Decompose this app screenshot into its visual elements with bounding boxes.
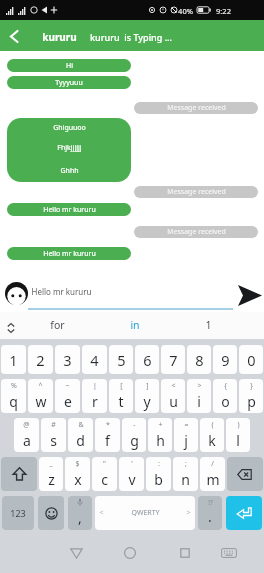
staticText: @ (23, 420, 30, 430)
button[interactable]: # (41, 418, 66, 452)
button[interactable]: 1 (189, 312, 227, 338)
staticText: z (48, 470, 55, 489)
button[interactable] (64, 541, 88, 565)
staticText: Fhjkjjjjjj (57, 143, 82, 153)
staticText: - (133, 420, 136, 430)
button[interactable]: & (68, 418, 93, 452)
button[interactable]: 9 (213, 345, 237, 374)
button[interactable]: for (38, 312, 76, 338)
button[interactable] (5, 282, 28, 305)
button[interactable] (227, 457, 263, 491)
button[interactable]: 6 (135, 345, 159, 374)
button[interactable]: !? (198, 496, 222, 530)
staticText: 123 (10, 507, 26, 519)
button[interactable] (118, 541, 142, 565)
staticText: Hello mr kururu (43, 249, 96, 259)
button[interactable]: 2 (28, 345, 53, 374)
staticText: Message received (167, 227, 226, 237)
button[interactable]: Hi (7, 59, 131, 72)
staticText: ( (211, 420, 214, 430)
staticText: in (130, 318, 140, 332)
staticText: d (76, 431, 85, 450)
button[interactable]: Hello mr kururu (7, 247, 131, 260)
staticText: | (93, 381, 97, 391)
staticText: 1 (205, 318, 212, 332)
button[interactable]: ' (119, 457, 144, 491)
staticText: y (143, 392, 151, 411)
button[interactable] (2, 24, 26, 48)
staticText: x (74, 470, 82, 489)
staticText: Message received (167, 103, 226, 113)
staticText: % (11, 381, 17, 391)
button[interactable] (3, 320, 19, 336)
button[interactable]: 1 (1, 345, 26, 374)
button[interactable]: @ (14, 418, 39, 452)
staticText: Hello mr kururu (31, 286, 92, 297)
button[interactable]: < (161, 379, 185, 413)
button[interactable]: % (1, 379, 26, 413)
button[interactable]: ( (200, 418, 224, 452)
button[interactable]: ~ (55, 379, 80, 413)
button[interactable]: | (82, 379, 107, 413)
button[interactable] (1, 457, 37, 491)
button[interactable]: = (174, 418, 198, 452)
staticText: e (64, 392, 72, 411)
button[interactable] (216, 541, 242, 565)
button[interactable]: + (148, 418, 172, 452)
button[interactable]: Hello mr kururu (7, 203, 131, 216)
button[interactable]: > (187, 379, 211, 413)
staticText: m (206, 470, 220, 489)
staticText: 9:22 (216, 6, 231, 16)
button[interactable]: Message received (134, 102, 258, 114)
button[interactable]: 0 (239, 345, 263, 374)
button[interactable]: : (146, 457, 171, 491)
staticText: t (118, 392, 124, 411)
button[interactable]: / (200, 457, 225, 491)
staticText: w (35, 392, 47, 411)
staticText: for (50, 318, 65, 332)
button[interactable]: Message received (134, 186, 258, 198)
button[interactable]: QWERTY (95, 496, 195, 530)
button[interactable]: 3 (55, 345, 80, 374)
button[interactable]: - (122, 418, 146, 452)
button[interactable]: in (116, 312, 154, 338)
button[interactable]: Message received (134, 226, 258, 238)
button[interactable]: Ghiguuoo (7, 118, 131, 182)
button[interactable]: * (95, 418, 120, 452)
staticText: , (78, 508, 82, 527)
staticText: : (158, 459, 160, 469)
staticText: 0 (247, 350, 256, 370)
staticText: 7 (169, 350, 178, 370)
staticText: 9 (221, 350, 230, 370)
button[interactable]: 5 (109, 345, 133, 374)
button[interactable]: ; (173, 457, 198, 491)
staticText: j (184, 431, 188, 450)
staticText: ] (146, 381, 149, 391)
button[interactable]: ^ (28, 379, 53, 413)
staticText: + (158, 420, 163, 430)
button[interactable]: 8 (187, 345, 211, 374)
staticText: 6 (143, 350, 152, 370)
button[interactable]: 123 (2, 496, 34, 530)
staticText: > (186, 508, 191, 518)
staticText: g (130, 431, 139, 450)
button[interactable]: } (239, 379, 263, 413)
button[interactable]: _ (39, 457, 63, 491)
button[interactable] (236, 285, 262, 307)
staticText: !? (208, 498, 213, 507)
button[interactable]: Tyyyuuu (7, 76, 131, 89)
button[interactable]: ] (135, 379, 159, 413)
button[interactable] (226, 496, 262, 530)
button[interactable]: " (92, 457, 117, 491)
staticText: QWERTY (131, 508, 160, 518)
button[interactable] (38, 496, 64, 530)
staticText: f (105, 431, 110, 450)
button[interactable]: [ (109, 379, 133, 413)
button[interactable]: ) (226, 418, 250, 452)
button[interactable]: { (213, 379, 237, 413)
button[interactable] (173, 541, 197, 565)
button[interactable]: $ (65, 457, 90, 491)
button[interactable]: 7 (161, 345, 185, 374)
button[interactable]: , (68, 496, 92, 530)
button[interactable]: 4 (82, 345, 107, 374)
